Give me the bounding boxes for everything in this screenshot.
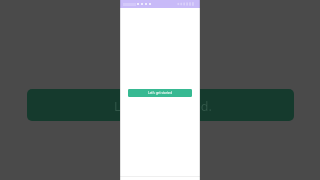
staticText: Let's get started bbox=[148, 91, 173, 95]
staticText: Let's get started. bbox=[114, 98, 212, 115]
other: Status icons bbox=[177, 2, 196, 6]
button[interactable]: Let's get started bbox=[128, 89, 192, 97]
